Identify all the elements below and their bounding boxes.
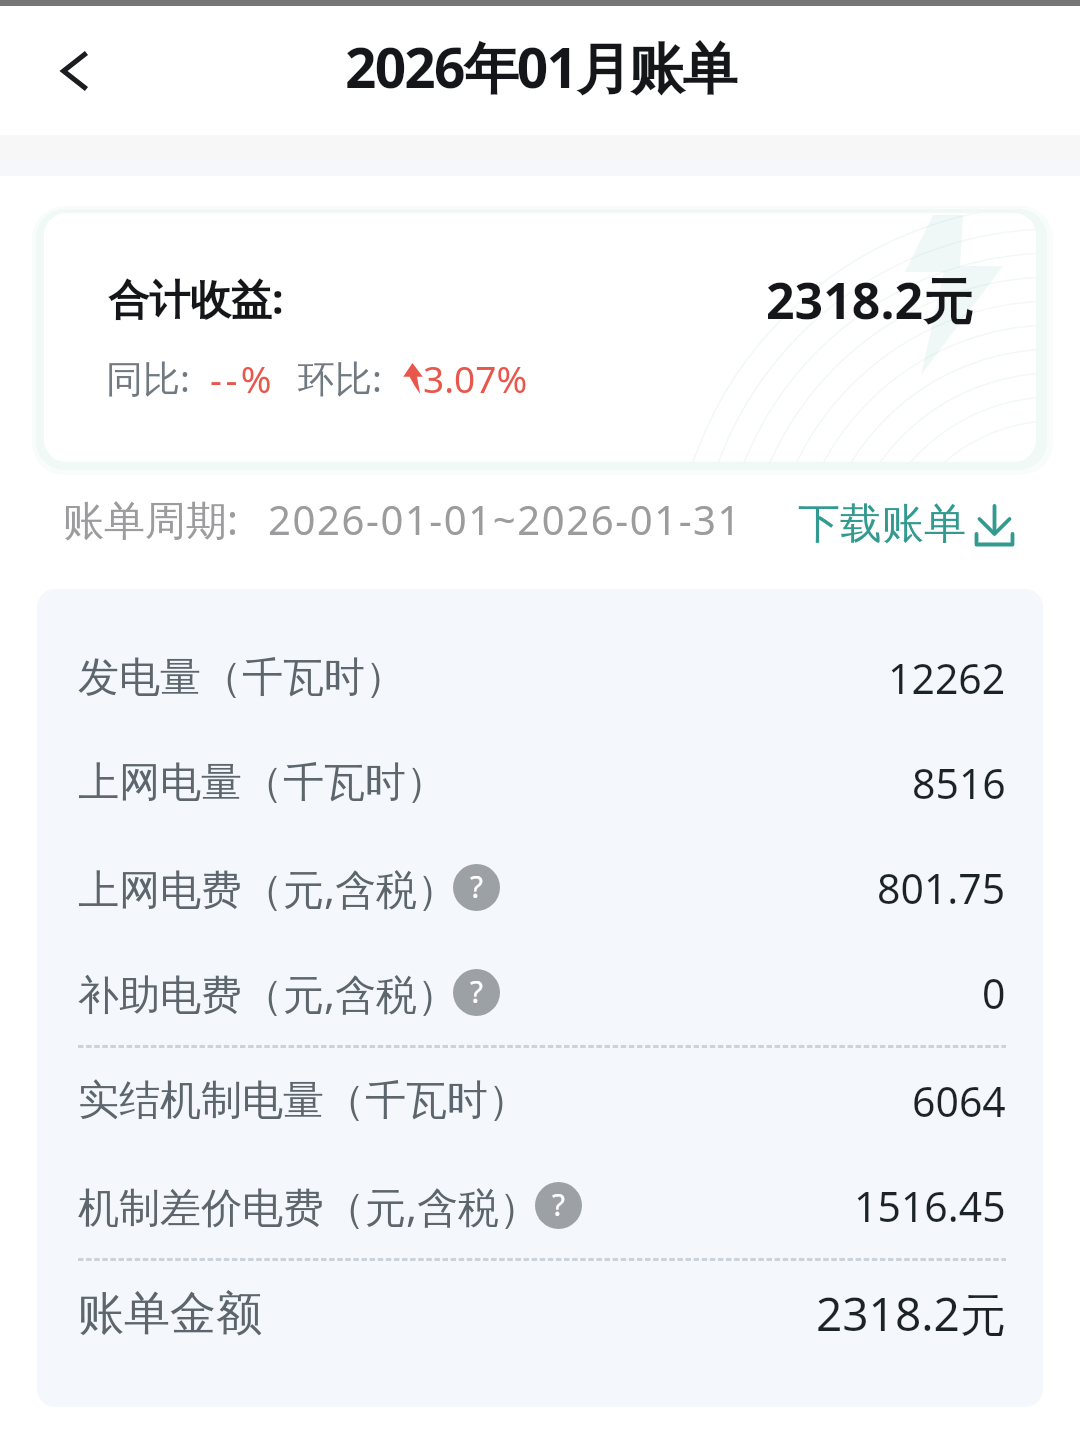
button[interactable]: Help xyxy=(535,1182,582,1229)
button[interactable]: 合计收益: xyxy=(44,213,1036,462)
staticText: 8516 xyxy=(912,755,1006,811)
button[interactable]: 补助电费（元,含税） xyxy=(78,940,1006,1045)
staticText: --% xyxy=(210,353,276,403)
button[interactable]: 发电量（千瓦时） xyxy=(78,625,1006,730)
staticText: 下载账单 xyxy=(798,498,966,551)
staticText: 同比: xyxy=(106,352,190,403)
staticText: 补助电费（元,含税） xyxy=(78,965,458,1021)
staticText: 机制差价电费（元,含税） xyxy=(78,1178,540,1234)
staticText: 6064 xyxy=(912,1073,1006,1129)
button[interactable]: 账单金额 xyxy=(78,1261,1006,1366)
staticText: 801.75 xyxy=(877,860,1006,916)
staticText: 环比: xyxy=(298,352,382,403)
other: Download xyxy=(975,503,1014,547)
staticText: 上网电量（千瓦时） xyxy=(78,757,447,809)
button[interactable]: 下载账单 xyxy=(798,492,1017,557)
staticText: 12262 xyxy=(888,650,1006,706)
staticText: 2026-01-01~2026-01-31 xyxy=(268,492,743,546)
button[interactable]: Help xyxy=(453,864,500,911)
staticText: ? xyxy=(470,866,484,907)
staticText: 发电量（千瓦时） xyxy=(78,652,406,704)
button[interactable]: 实结机制电量（千瓦时） xyxy=(78,1048,1006,1153)
staticText: 3.07% xyxy=(423,353,528,403)
button[interactable]: 上网电费（元,含税） xyxy=(78,835,1006,940)
staticText: ? xyxy=(552,1184,566,1225)
staticText: 2318.2元 xyxy=(816,1282,1006,1345)
staticText: 1516.45 xyxy=(854,1178,1006,1234)
staticText: ? xyxy=(470,971,484,1012)
button[interactable]: 机制差价电费（元,含税） xyxy=(78,1153,1006,1258)
button[interactable]: Help xyxy=(453,969,500,1016)
staticText: 0 xyxy=(982,965,1006,1021)
staticText: 实结机制电量（千瓦时） xyxy=(78,1075,529,1127)
button[interactable]: Back xyxy=(32,29,116,113)
staticText: 账单金额 xyxy=(78,1285,262,1343)
staticText: 上网电费（元,含税） xyxy=(78,860,458,916)
staticText: 2318.2元 xyxy=(766,266,974,334)
staticText: 账单周期: xyxy=(63,491,238,547)
staticText: 合计收益: xyxy=(108,270,284,326)
button[interactable]: 上网电量（千瓦时） xyxy=(78,730,1006,835)
staticText: 2026年01月账单 xyxy=(345,29,736,104)
